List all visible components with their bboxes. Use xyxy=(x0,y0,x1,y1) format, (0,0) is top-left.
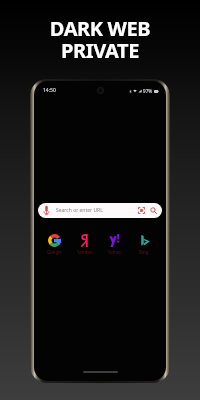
staticText: Yahoo xyxy=(108,249,121,255)
staticText: Bing xyxy=(139,249,149,255)
staticText: Yandex xyxy=(77,249,92,255)
other: Search xyxy=(150,207,157,214)
staticText: DARK WEB PRIVATE xyxy=(0,15,200,64)
button[interactable]: Yandex xyxy=(69,234,99,253)
button[interactable]: Voice search xyxy=(38,203,162,218)
button[interactable]: Bing xyxy=(129,234,159,253)
staticText: Google xyxy=(47,249,62,255)
button[interactable]: Yahoo xyxy=(99,234,129,253)
staticText: Search or enter URL xyxy=(56,207,138,214)
button[interactable]: Google xyxy=(39,234,69,253)
staticText: 14:50 xyxy=(43,87,56,94)
other: Voice search xyxy=(43,205,50,216)
other: Scan QR code xyxy=(138,207,145,214)
staticText: 97% xyxy=(143,88,153,94)
